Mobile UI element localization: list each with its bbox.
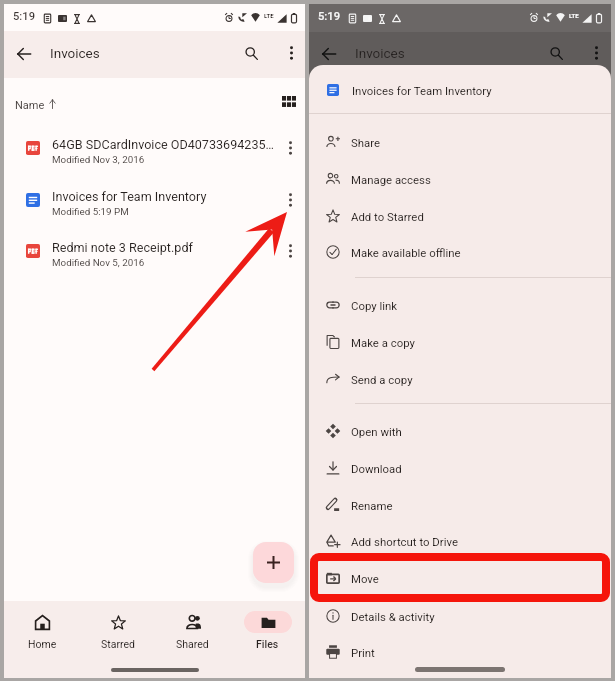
button[interactable]: Add shortcut to Drive bbox=[309, 523, 611, 559]
button[interactable]: Create new bbox=[253, 542, 294, 583]
button[interactable]: More options bbox=[285, 46, 298, 60]
button[interactable]: Starred bbox=[80, 601, 155, 659]
staticText: Add to Starred bbox=[351, 210, 424, 223]
staticText: Name bbox=[15, 99, 45, 112]
staticText: Copy link bbox=[351, 299, 398, 312]
button[interactable]: Print bbox=[309, 634, 611, 670]
button[interactable]: Download bbox=[309, 450, 611, 486]
staticText: Manage access bbox=[351, 173, 431, 186]
button[interactable]: Files bbox=[230, 601, 305, 659]
staticText: Home bbox=[28, 638, 57, 650]
button[interactable]: Back bbox=[17, 47, 31, 61]
button[interactable]: Invoices for Team Inventory bbox=[4, 181, 305, 227]
button[interactable]: Rename bbox=[309, 487, 611, 523]
staticText: Send a copy bbox=[351, 373, 413, 386]
button[interactable]: Copy link bbox=[309, 287, 611, 323]
button[interactable]: Invoices for Team Inventory bbox=[309, 72, 611, 108]
staticText: Share bbox=[351, 136, 381, 149]
staticText: Move bbox=[351, 572, 379, 585]
button[interactable]: Name bbox=[15, 94, 56, 116]
button[interactable]: More options bbox=[284, 244, 297, 258]
staticText: Rename bbox=[351, 499, 393, 512]
button[interactable]: Open with bbox=[309, 413, 611, 449]
button[interactable]: Manage access bbox=[309, 161, 611, 197]
button[interactable]: Move bbox=[309, 560, 611, 596]
staticText: 64GB SDCardInvoice OD40733694235... bbox=[52, 137, 274, 152]
staticText: Modified Nov 3, 2016 bbox=[52, 154, 145, 165]
button[interactable]: More options bbox=[284, 193, 297, 207]
staticText: Make a copy bbox=[351, 336, 415, 349]
staticText: Print bbox=[351, 646, 375, 659]
button[interactable]: Add to Starred bbox=[309, 198, 611, 234]
staticText: Open with bbox=[351, 425, 402, 438]
staticText: Make available offline bbox=[351, 246, 461, 259]
staticText: Starred bbox=[101, 638, 135, 650]
button[interactable]: Details & activity bbox=[309, 598, 611, 634]
staticText: Details & activity bbox=[351, 610, 435, 623]
button[interactable]: Redmi note 3 Receipt.pdf bbox=[4, 232, 305, 278]
staticText: Redmi note 3 Receipt.pdf bbox=[52, 240, 274, 255]
staticText: Add shortcut to Drive bbox=[351, 535, 458, 548]
button[interactable]: Make available offline bbox=[309, 234, 611, 270]
staticText: Invoices for Team Inventory bbox=[52, 189, 274, 204]
button[interactable]: Search bbox=[245, 47, 258, 60]
staticText: Files bbox=[256, 638, 279, 650]
staticText: LTE bbox=[569, 12, 579, 19]
button[interactable]: Grid view bbox=[282, 96, 296, 107]
button[interactable]: Share bbox=[309, 124, 611, 160]
button[interactable]: Shared bbox=[155, 601, 230, 659]
button[interactable]: More options bbox=[284, 141, 297, 155]
button[interactable]: Send a copy bbox=[309, 361, 611, 397]
staticText: Download bbox=[351, 462, 402, 475]
staticText: Modified 5:19 PM bbox=[52, 206, 129, 217]
staticText: Invoices bbox=[50, 45, 100, 61]
staticText: Invoices for Team Inventory bbox=[352, 84, 492, 97]
button[interactable]: Home bbox=[4, 601, 80, 659]
staticText: Invoices bbox=[355, 45, 405, 61]
staticText: LTE bbox=[264, 12, 274, 19]
button[interactable]: Make a copy bbox=[309, 324, 611, 360]
staticText: Modified Nov 5, 2016 bbox=[52, 257, 145, 268]
staticText: 5:19 bbox=[13, 10, 36, 23]
staticText: 5:19 bbox=[318, 10, 341, 23]
button[interactable]: 64GB SDCardInvoice OD40733694235... bbox=[4, 129, 305, 175]
staticText: Shared bbox=[176, 638, 209, 650]
